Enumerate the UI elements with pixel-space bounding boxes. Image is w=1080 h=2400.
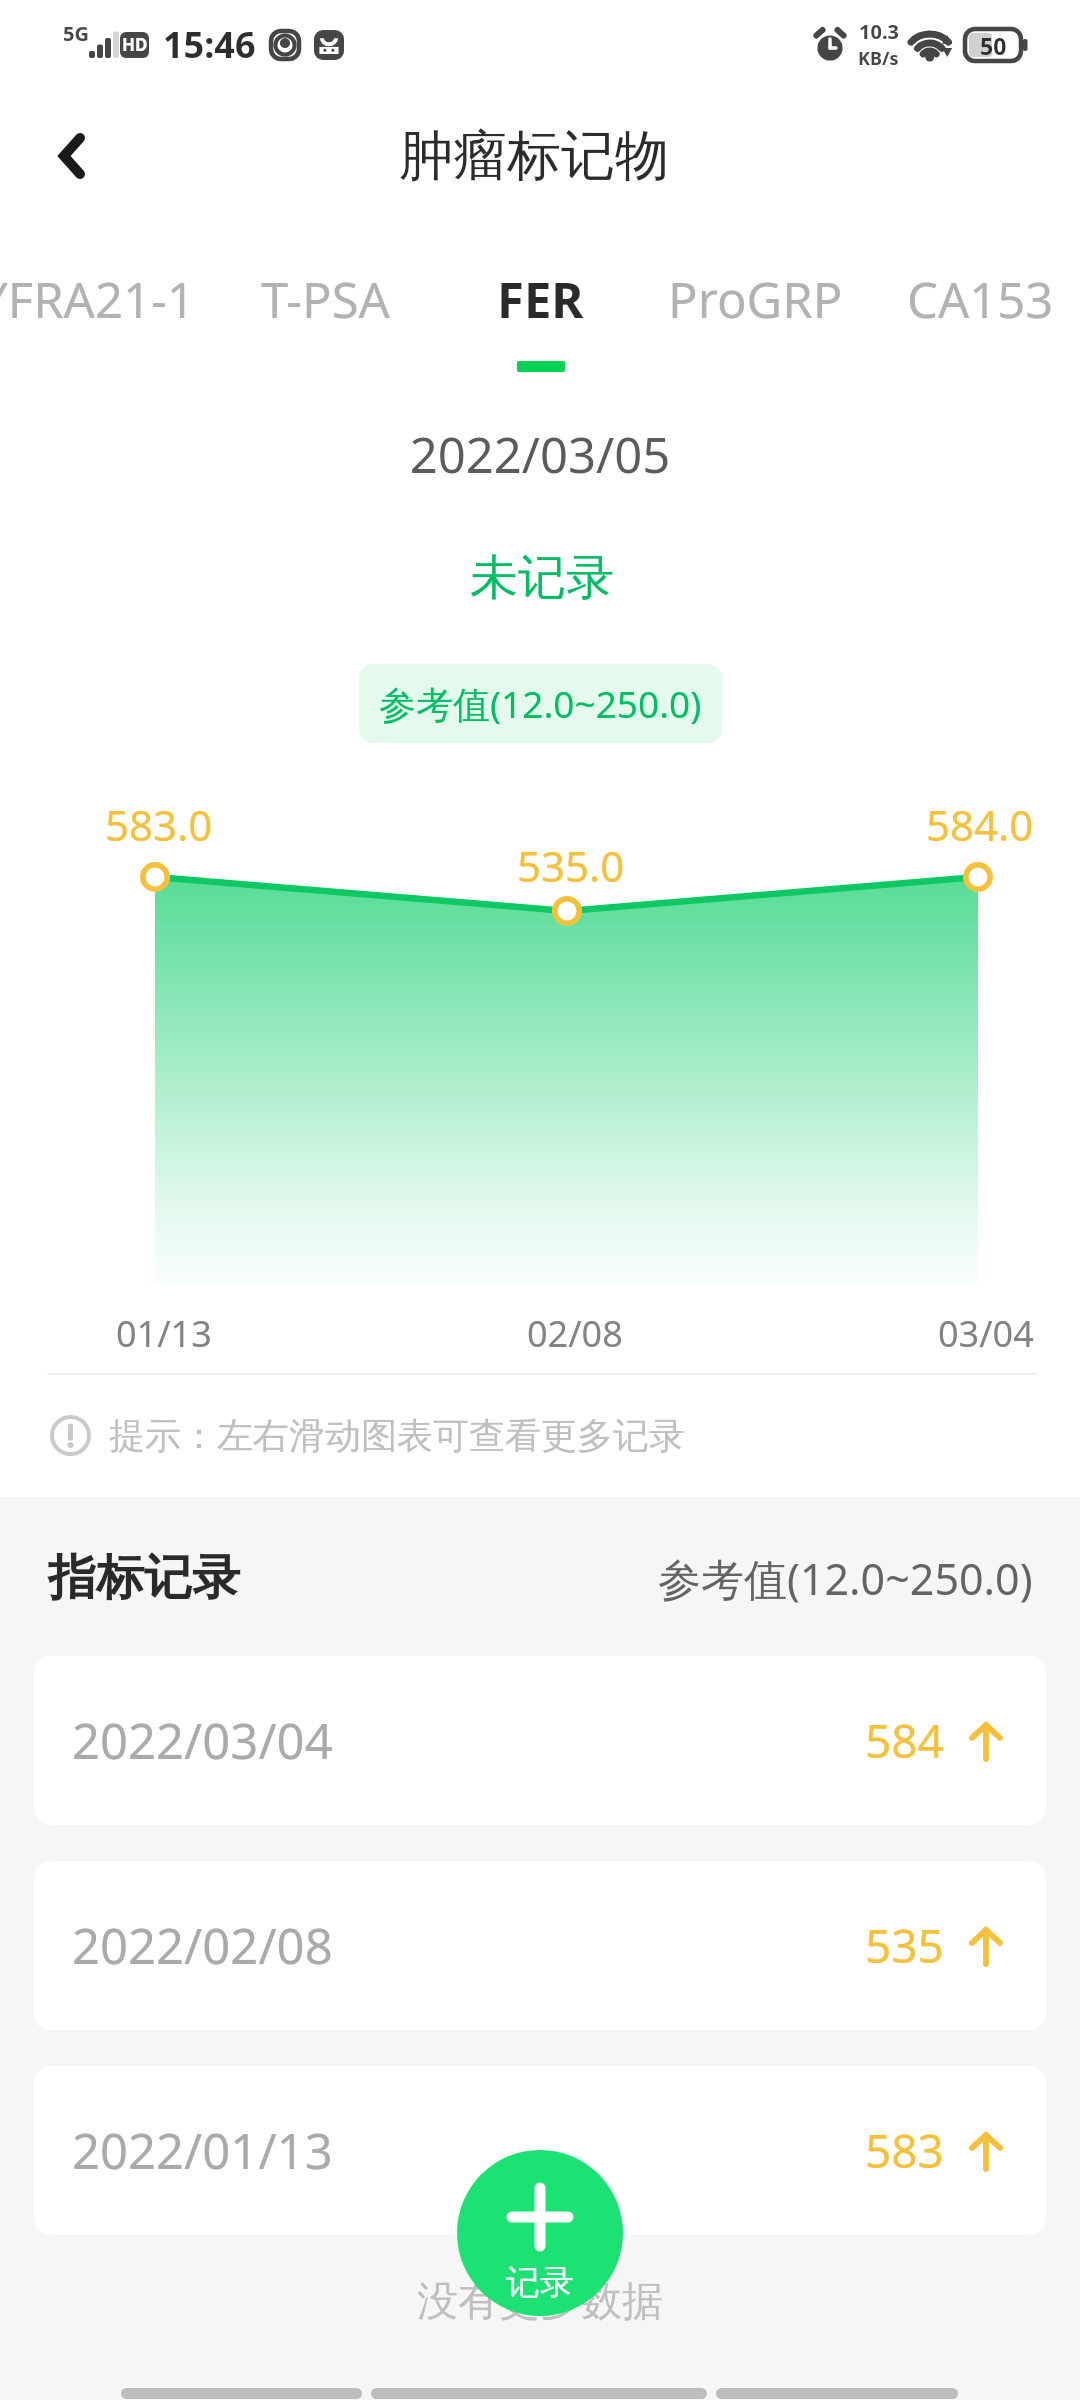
staticText: CYFRA21-1 [0,266,195,333]
staticText: ProGRP [668,266,843,333]
button[interactable]: Home [371,2388,707,2399]
staticText: 参考值(12.0~250.0) [379,678,702,729]
button[interactable]: 2022/03/04 [34,1656,1046,1825]
staticText: 2022/02/08 [72,1912,333,1979]
button[interactable]: FER [415,242,665,382]
button[interactable]: ProGRP [630,242,880,382]
staticText: FER [497,266,584,333]
staticText: 01/13 [116,1309,212,1358]
staticText: 50 [980,30,1007,61]
staticText: 535.0 [517,837,625,894]
staticText: 2022/01/13 [72,2117,333,2184]
button[interactable]: CA153 [855,242,1080,382]
staticText: 记录 [506,2261,574,2304]
button[interactable]: Back [121,2388,362,2399]
staticText: 02/08 [527,1309,623,1358]
staticText: 535 [865,1914,944,1977]
button[interactable]: CYFRA21-1 [0,242,197,382]
staticText: 指标记录 [48,1548,240,1608]
button[interactable]: 2022/02/08 [34,1861,1046,2030]
staticText: 2022/03/05 [0,421,1080,488]
staticText: 提示：左右滑动图表可查看更多记录 [109,1413,685,1458]
staticText: KB/s [858,46,899,71]
staticText: 584 [865,1709,944,1772]
staticText: 5G [63,20,89,47]
staticText: T-PSA [261,266,390,333]
staticText: 03/04 [938,1309,1034,1358]
staticText: HD [122,33,148,56]
button[interactable]: Recents [716,2388,958,2399]
staticText: 583 [865,2119,944,2182]
staticText: 未记录 [2,548,1080,608]
staticText: 10.3 [859,18,899,45]
button[interactable]: Add record [457,2150,623,2316]
button[interactable]: Back [32,116,112,196]
button[interactable]: 2022/01/13 [34,2066,1046,2235]
staticText: 583.0 [105,796,213,853]
staticText: 没有更多数据 [0,2276,1080,2328]
staticText: CA153 [907,266,1054,333]
staticText: 584.0 [926,796,1034,853]
staticText: 15:46 [163,20,256,69]
staticText: 肿瘤标记物 [399,122,669,190]
staticText: 2022/03/04 [72,1707,333,1774]
button[interactable]: T-PSA [200,242,450,382]
staticText: 参考值(12.0~250.0) [658,1549,1033,1608]
